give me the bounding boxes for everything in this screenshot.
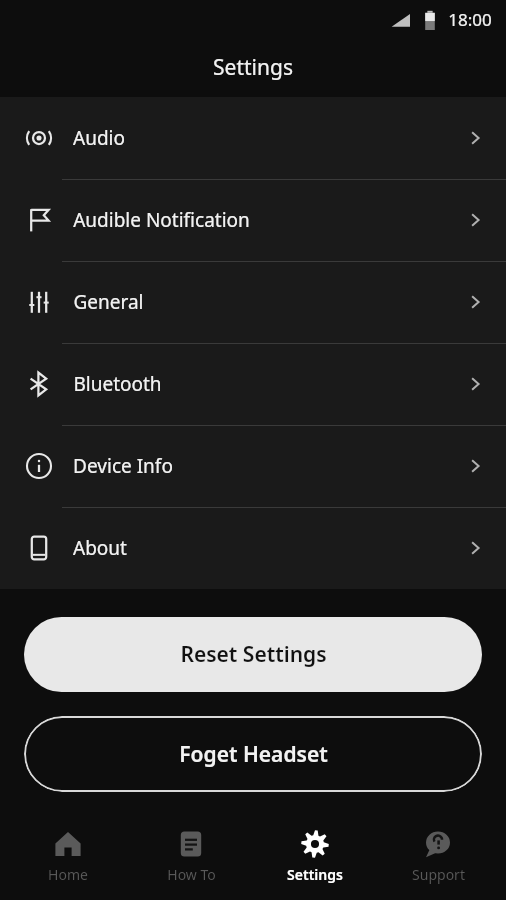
staticText: General — [73, 289, 144, 315]
button[interactable]: Home — [13, 829, 123, 884]
button[interactable]: Device Info — [0, 425, 506, 507]
staticText: About — [73, 535, 127, 561]
staticText: Foget Headset — [179, 740, 328, 769]
button[interactable]: Foget Headset — [24, 716, 482, 792]
button[interactable]: About — [0, 507, 506, 589]
button[interactable]: Reset Settings — [24, 617, 482, 692]
button[interactable]: Audible Notification — [0, 179, 506, 261]
staticText: Audible Notification — [73, 207, 250, 233]
button[interactable]: Audio — [0, 97, 506, 179]
staticText: Support — [412, 865, 465, 884]
staticText: Settings — [287, 865, 343, 884]
button[interactable]: How To — [136, 829, 246, 884]
staticText: Home — [48, 865, 88, 884]
button[interactable]: Bluetooth — [0, 343, 506, 425]
staticText: Reset Settings — [180, 640, 327, 669]
staticText: Audio — [73, 125, 125, 151]
button[interactable]: Support — [383, 829, 493, 884]
staticText: How To — [167, 865, 216, 884]
button[interactable]: General — [0, 261, 506, 343]
staticText: Bluetooth — [73, 371, 162, 397]
staticText: Settings — [213, 53, 293, 82]
button[interactable]: Settings — [260, 829, 370, 884]
staticText: 18:00 — [448, 8, 492, 31]
staticText: Device Info — [73, 453, 173, 479]
